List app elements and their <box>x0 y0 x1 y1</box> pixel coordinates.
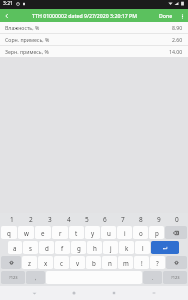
button[interactable]: ! <box>134 256 149 269</box>
button[interactable]: w <box>18 226 34 239</box>
staticText: 5 <box>85 215 89 224</box>
button[interactable]: u <box>101 226 116 239</box>
button[interactable]: n <box>102 256 117 269</box>
button[interactable]: v <box>70 256 85 269</box>
button[interactable]: j <box>103 241 118 254</box>
staticText: 7 <box>121 215 125 224</box>
button[interactable]: Shift <box>1 256 21 269</box>
staticText: f <box>61 244 64 252</box>
button[interactable]: f <box>55 241 70 254</box>
staticText: 3 <box>48 215 52 224</box>
staticText: , <box>35 274 37 281</box>
button[interactable]: b <box>86 256 101 269</box>
button[interactable]: t <box>69 226 84 239</box>
staticText: ! <box>141 259 143 267</box>
button[interactable]: m <box>118 256 133 269</box>
button[interactable]: k <box>119 241 134 254</box>
staticText: 2 <box>29 215 33 224</box>
staticText: r <box>59 229 62 237</box>
button[interactable]: Hide keyboard <box>148 287 160 299</box>
button[interactable]: 0 <box>168 213 186 225</box>
button[interactable]: Enter <box>151 241 179 254</box>
staticText: k <box>125 244 129 252</box>
button[interactable]: ? <box>150 256 165 269</box>
button[interactable]: i <box>117 226 132 239</box>
button[interactable]: 1 <box>2 213 21 225</box>
staticText: y <box>91 229 95 237</box>
staticText: 4 <box>67 215 71 224</box>
button[interactable]: 3 <box>40 213 59 225</box>
button[interactable]: Recent apps <box>108 287 120 299</box>
button[interactable]: Влажность, % <box>0 22 188 33</box>
staticText: 9 <box>157 215 161 224</box>
staticText: g <box>77 244 81 252</box>
staticText: x <box>44 259 48 267</box>
button[interactable]: a <box>8 241 22 254</box>
staticText: o <box>139 229 143 237</box>
staticText: ?123 <box>171 275 180 280</box>
button[interactable]: Back <box>28 287 40 299</box>
button[interactable]: Back <box>0 9 13 22</box>
staticText: 8.90 <box>172 24 183 31</box>
button[interactable]: Backspace <box>165 226 187 239</box>
staticText: ТТН 01000002 dated 9/27/2020 3:20:17 PM <box>13 12 156 19</box>
staticText: n <box>108 259 112 267</box>
staticText: Зерн. примесь, % <box>5 48 49 55</box>
staticText: m <box>123 259 129 267</box>
staticText: i <box>124 229 126 237</box>
button[interactable]: 4 <box>59 213 78 225</box>
button[interactable]: l <box>135 241 150 254</box>
staticText: s <box>29 244 32 252</box>
button[interactable]: Сорн. примесь, % <box>0 34 188 45</box>
staticText: 2.60 <box>172 36 183 43</box>
staticText: t <box>75 229 78 237</box>
button[interactable]: x <box>38 256 53 269</box>
staticText: 1 <box>10 215 14 224</box>
staticText: Влажность, % <box>5 24 40 31</box>
staticText: 6 <box>103 215 107 224</box>
button[interactable]: 8 <box>132 213 150 225</box>
staticText: w <box>24 229 29 237</box>
staticText: e <box>41 229 45 237</box>
staticText: 14.00 <box>169 48 183 55</box>
button[interactable]: y <box>85 226 100 239</box>
staticText: h <box>93 244 97 252</box>
staticText: 0 <box>175 215 179 224</box>
staticText: . <box>152 274 154 281</box>
button[interactable]: Shift <box>166 256 187 269</box>
button[interactable]: ?123 <box>163 271 187 284</box>
button[interactable]: ?123 <box>1 271 25 284</box>
button[interactable]: 5 <box>78 213 96 225</box>
button[interactable]: q <box>1 226 17 239</box>
button[interactable]: r <box>52 226 68 239</box>
staticText: 3:21 <box>3 0 13 7</box>
button[interactable]: d <box>39 241 54 254</box>
button[interactable]: g <box>71 241 86 254</box>
staticText: b <box>92 259 96 267</box>
staticText: j <box>110 244 112 252</box>
button[interactable]: s <box>23 241 38 254</box>
button[interactable]: 9 <box>150 213 168 225</box>
button[interactable]: More options <box>176 10 188 22</box>
button[interactable]: 6 <box>96 213 114 225</box>
button[interactable]: Зерн. примесь, % <box>0 46 188 57</box>
button[interactable]: Home <box>68 287 80 299</box>
button[interactable]: o <box>133 226 148 239</box>
staticText: c <box>60 259 63 267</box>
button[interactable]: Done <box>159 12 173 19</box>
button[interactable]: c <box>54 256 69 269</box>
button[interactable]: 2 <box>21 213 40 225</box>
button[interactable]: z <box>22 256 37 269</box>
staticText: p <box>155 229 159 237</box>
button[interactable]: e <box>35 226 51 239</box>
staticText: a <box>13 244 17 252</box>
button[interactable]: , <box>26 271 45 284</box>
staticText: Сорн. примесь, % <box>5 36 50 43</box>
staticText: u <box>107 229 111 237</box>
button[interactable]: 7 <box>114 213 132 225</box>
staticText: ?123 <box>9 275 18 280</box>
button[interactable]: p <box>149 226 164 239</box>
button[interactable]: h <box>87 241 102 254</box>
